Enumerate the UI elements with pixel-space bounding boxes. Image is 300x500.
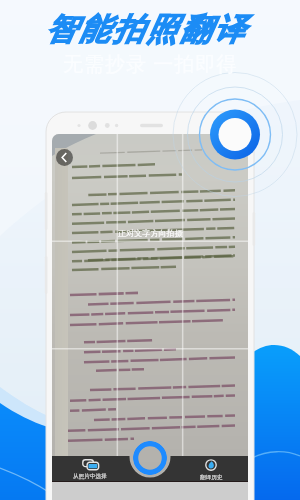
staticText: 翻译历史 (200, 474, 223, 481)
staticText: 正对文字方向拍摄 (118, 228, 183, 238)
button[interactable]: Take photo (133, 441, 167, 475)
button[interactable]: Back (56, 149, 73, 166)
button[interactable]: 从照片中选择 (66, 459, 114, 480)
button[interactable]: 翻译历史 (187, 459, 235, 481)
staticText: 从照片中选择 (73, 473, 107, 480)
staticText: 智能拍照翻译 (45, 10, 247, 49)
